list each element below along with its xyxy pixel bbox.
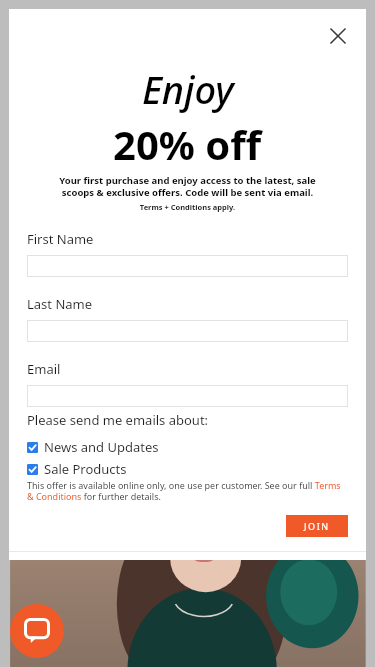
button[interactable] (27, 385, 348, 407)
staticText: Email (27, 360, 61, 378)
button[interactable]: Open chat (10, 604, 64, 658)
staticText: News and Updates (44, 438, 159, 456)
staticText: Please send me emails about: (27, 411, 209, 429)
staticText: Last Name (27, 295, 93, 313)
staticText: Terms + Conditions apply. (9, 202, 366, 212)
button[interactable]: Sale Products (27, 460, 348, 478)
staticText: 20% off (113, 117, 262, 171)
staticText: JOIN (304, 520, 330, 532)
button[interactable] (27, 255, 348, 277)
button[interactable]: This offer is available online only, one… (27, 479, 348, 503)
button[interactable]: News and Updates (27, 438, 348, 456)
staticText: Enjoy (142, 63, 234, 115)
button[interactable] (27, 320, 348, 342)
staticText: Your first purchase and enjoy access to … (55, 174, 320, 199)
staticText: First Name (27, 230, 94, 248)
button[interactable]: Close (323, 21, 353, 51)
button[interactable]: JOIN (286, 515, 348, 537)
staticText: Sale Products (44, 460, 127, 478)
